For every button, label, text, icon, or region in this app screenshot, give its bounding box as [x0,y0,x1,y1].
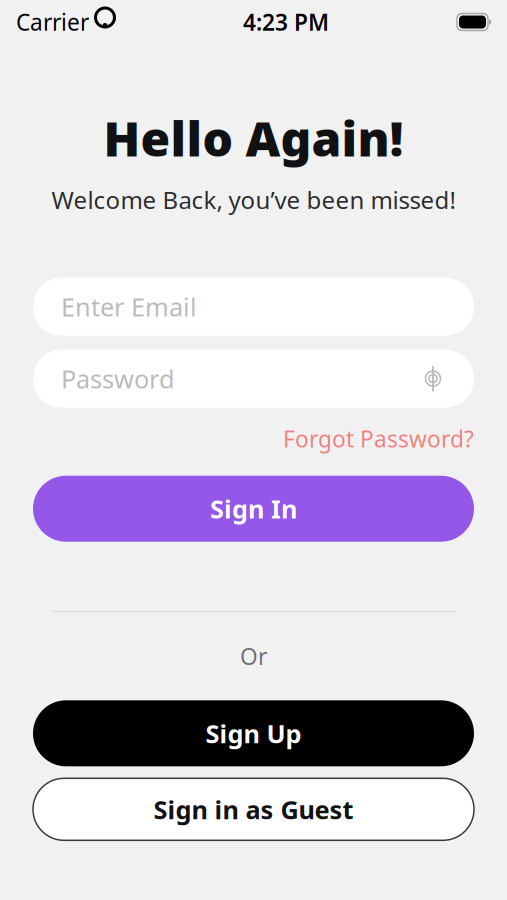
staticText: 4:23 PM [243,7,329,37]
staticText: Sign In [210,492,297,525]
staticText: Or [240,641,267,671]
button[interactable]: Forgot Password? [283,424,474,454]
staticText: Carrier [16,7,89,37]
staticText: Welcome Back, you’ve been missed! [51,184,455,216]
button[interactable]: Enter Email [33,278,474,336]
staticText: Sign Up [205,716,301,750]
button[interactable]: Sign in as Guest [33,778,474,840]
staticText: Hello Again! [103,106,403,170]
button[interactable]: Sign Up [33,700,474,766]
staticText: Password [61,362,175,395]
staticText: Enter Email [61,290,197,323]
button[interactable]: Password [33,350,474,408]
staticText: Sign in as Guest [153,792,353,826]
staticText: Forgot Password? [283,424,474,454]
button[interactable]: Sign In [33,476,474,542]
